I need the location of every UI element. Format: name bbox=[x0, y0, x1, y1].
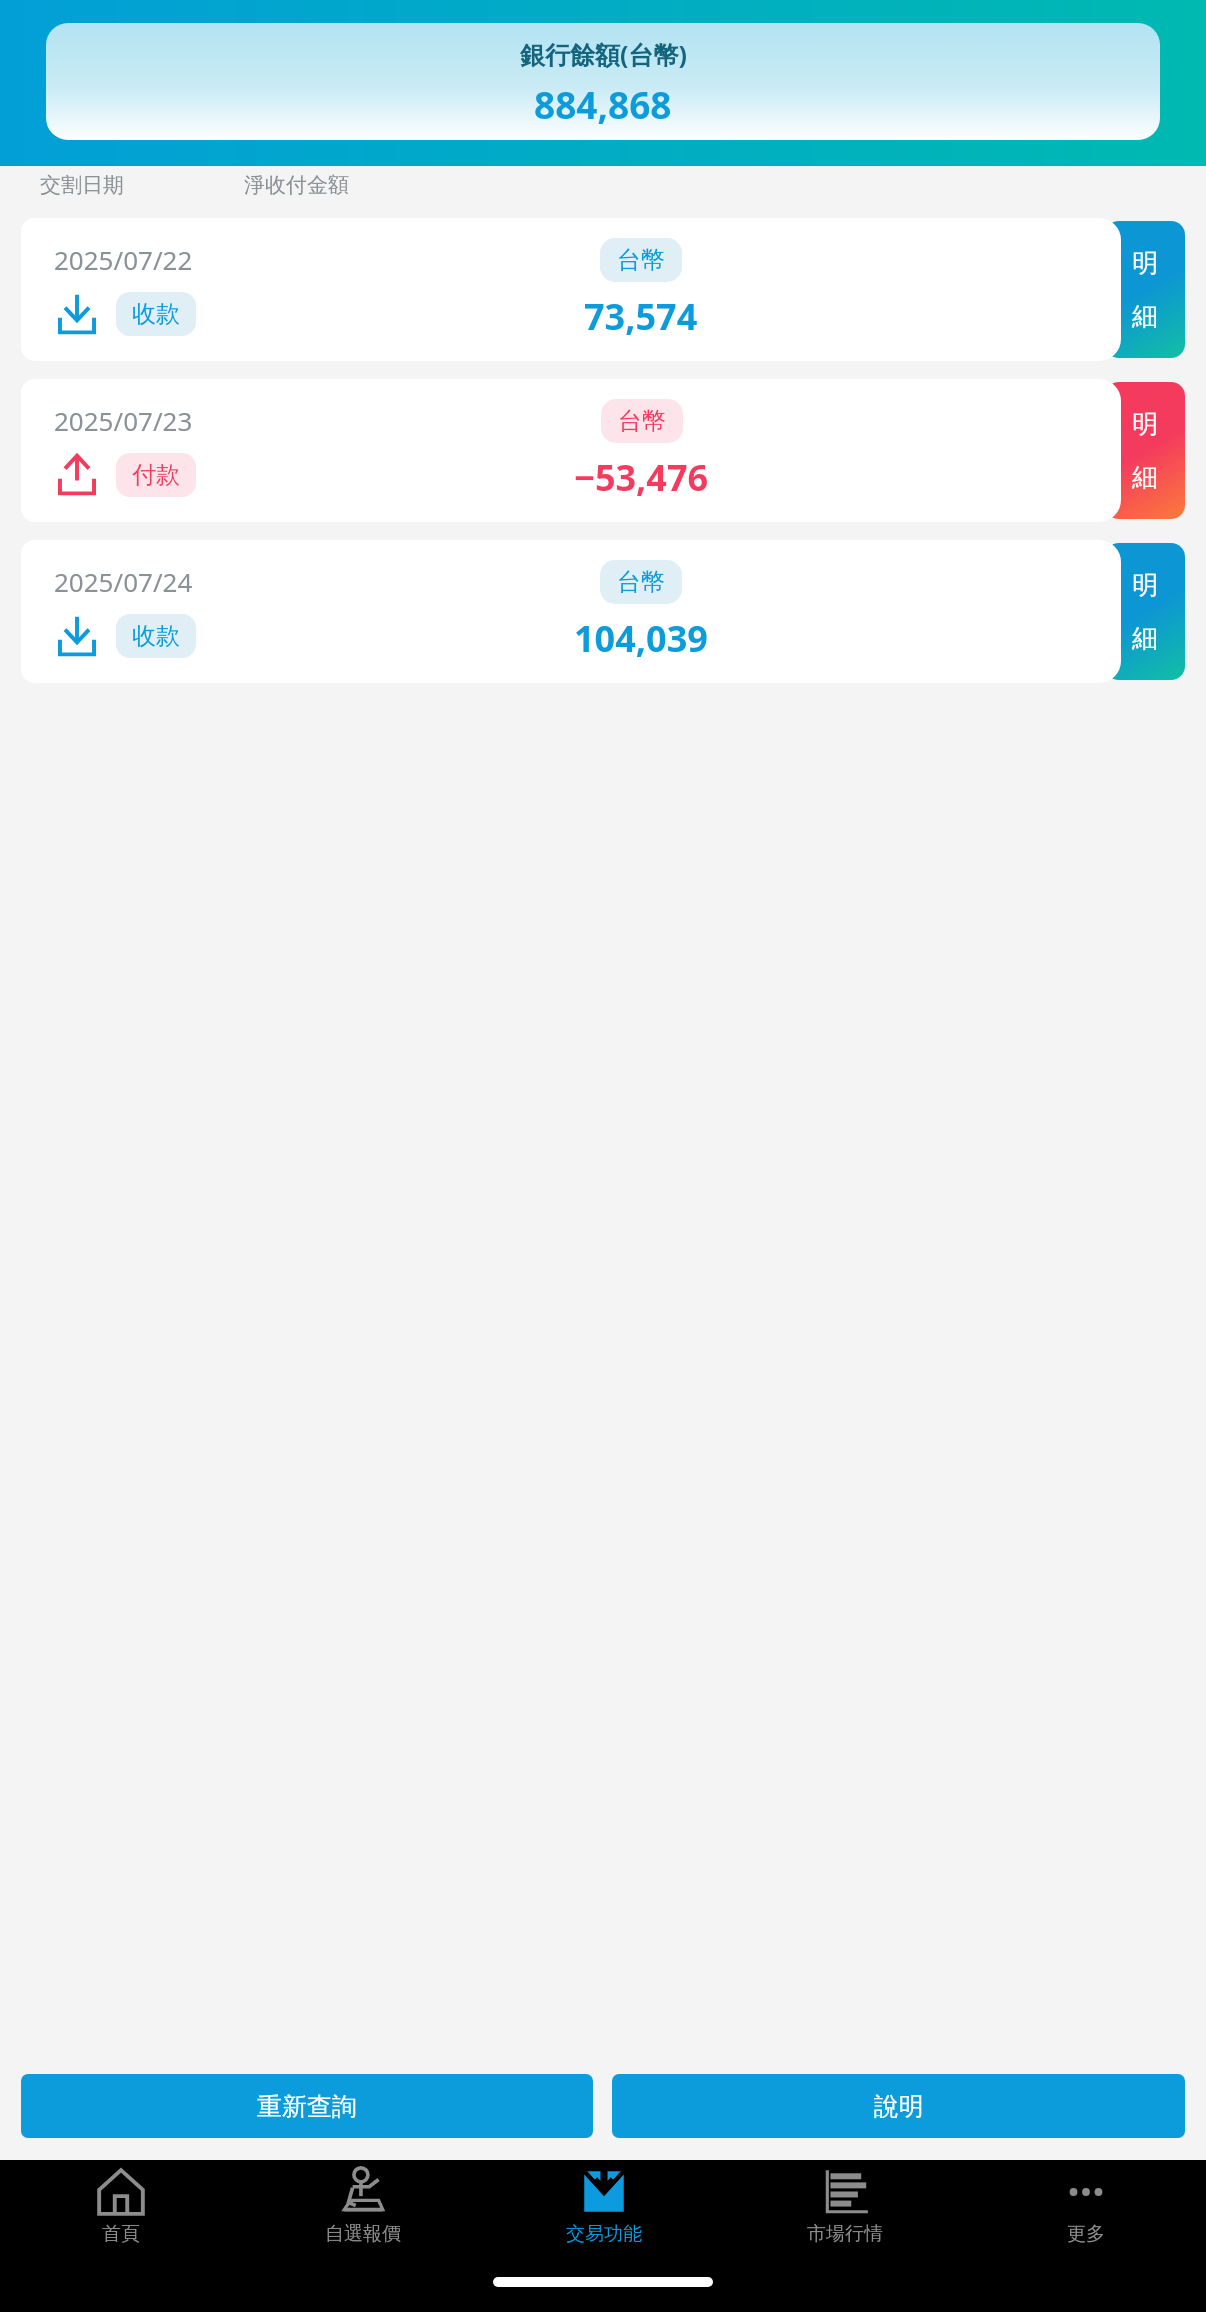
button[interactable]: 說明 bbox=[612, 2074, 1185, 2138]
other: 收款 bbox=[54, 291, 100, 337]
staticText: 明 bbox=[1132, 408, 1158, 441]
staticText: 市場行情 bbox=[807, 2222, 883, 2246]
staticText: 73,574 bbox=[584, 292, 698, 341]
staticText: 更多 bbox=[1067, 2222, 1105, 2246]
staticText: 台幣 bbox=[617, 567, 665, 597]
button[interactable]: 明 bbox=[1105, 221, 1185, 358]
other: 收款 bbox=[54, 613, 100, 659]
staticText: 付款 bbox=[132, 460, 180, 490]
staticText: 884,868 bbox=[534, 79, 672, 129]
staticText: 淨收付金額 bbox=[244, 172, 349, 198]
staticText: −53,476 bbox=[574, 453, 709, 502]
staticText: 銀行餘額(台幣) bbox=[520, 37, 687, 71]
staticText: 重新查詢 bbox=[257, 2091, 357, 2122]
button[interactable]: 自選報價 bbox=[242, 2160, 483, 2252]
staticText: 收款 bbox=[132, 621, 180, 651]
button[interactable]: 2025/07/24 bbox=[21, 540, 1121, 683]
staticText: 2025/07/22 bbox=[54, 242, 193, 277]
button[interactable]: 交易功能 bbox=[483, 2160, 724, 2252]
staticText: 104,039 bbox=[574, 614, 708, 663]
staticText: 自選報價 bbox=[325, 2222, 401, 2246]
staticText: 交易功能 bbox=[566, 2222, 642, 2246]
other: 付款 bbox=[54, 452, 100, 498]
staticText: 明 bbox=[1132, 247, 1158, 280]
button[interactable]: 市場行情 bbox=[724, 2160, 965, 2252]
staticText: 細 bbox=[1132, 461, 1158, 494]
button[interactable]: 明 bbox=[1105, 382, 1185, 519]
staticText: 首頁 bbox=[102, 2222, 140, 2246]
staticText: 台幣 bbox=[617, 245, 665, 275]
button[interactable]: 2025/07/22 bbox=[21, 218, 1121, 361]
button[interactable]: 首頁 bbox=[0, 2160, 242, 2252]
button[interactable]: 更多 bbox=[965, 2160, 1206, 2252]
button[interactable]: 重新查詢 bbox=[21, 2074, 593, 2138]
staticText: 2025/07/23 bbox=[54, 403, 193, 438]
button[interactable]: 明 bbox=[1105, 543, 1185, 680]
button[interactable]: 銀行餘額(台幣) bbox=[46, 23, 1160, 140]
staticText: 明 bbox=[1132, 569, 1158, 602]
staticText: 台幣 bbox=[618, 406, 666, 436]
staticText: 說明 bbox=[874, 2091, 924, 2122]
staticText: 細 bbox=[1132, 300, 1158, 333]
staticText: 交割日期 bbox=[40, 172, 124, 198]
staticText: 2025/07/24 bbox=[54, 564, 193, 599]
staticText: 收款 bbox=[132, 299, 180, 329]
staticText: 細 bbox=[1132, 622, 1158, 655]
button[interactable]: 2025/07/23 bbox=[21, 379, 1121, 522]
